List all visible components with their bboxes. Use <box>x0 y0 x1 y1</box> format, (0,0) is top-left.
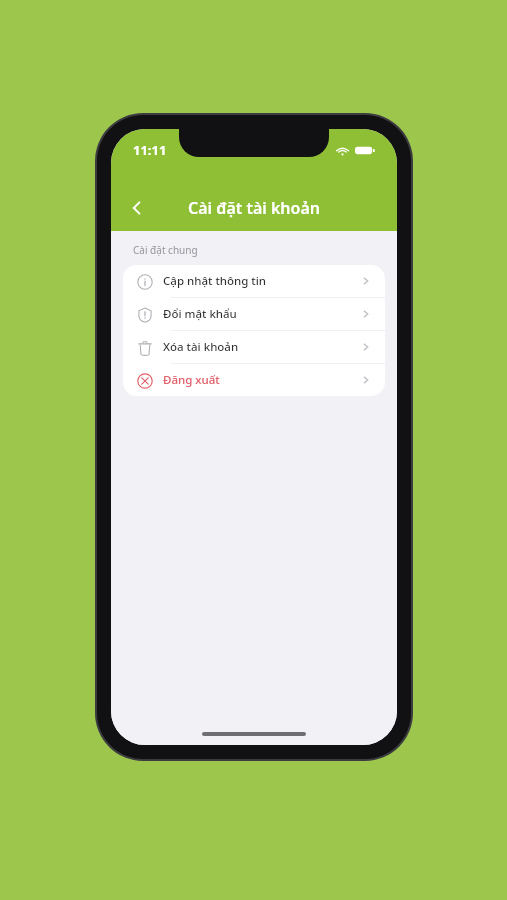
staticText: Cài đặt tài khoản <box>188 197 321 219</box>
button[interactable]: Đổi mật khẩu <box>123 298 385 330</box>
staticText: Đổi mật khẩu <box>163 306 237 322</box>
staticText: Cập nhật thông tin <box>163 273 267 289</box>
button[interactable]: Đăng xuất <box>123 364 385 396</box>
button[interactable]: Cập nhật thông tin <box>123 265 385 297</box>
staticText: Đăng xuất <box>163 372 220 388</box>
staticText: Xóa tài khoản <box>163 339 239 355</box>
staticText: Cài đặt chung <box>133 243 198 257</box>
button[interactable]: Back <box>117 188 157 228</box>
staticText: 11:11 <box>133 141 167 159</box>
button[interactable]: Xóa tài khoản <box>123 331 385 363</box>
